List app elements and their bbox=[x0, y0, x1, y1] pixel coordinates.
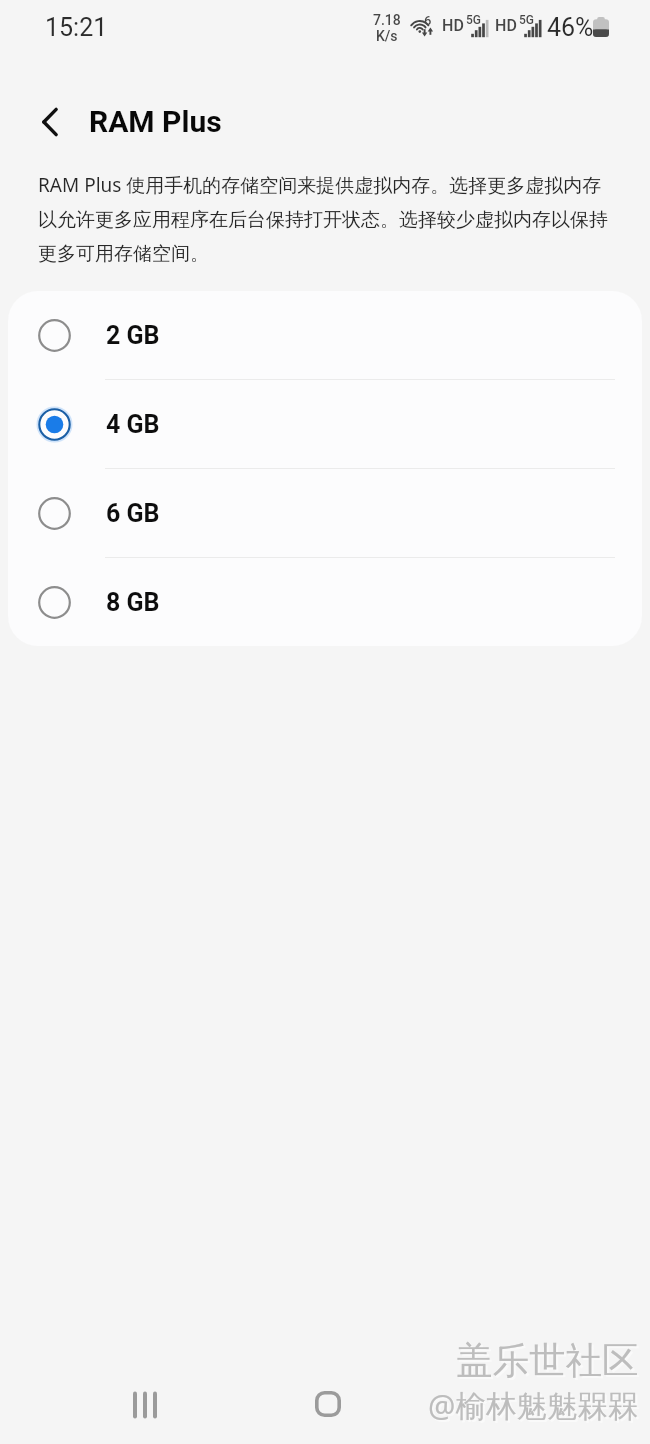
staticText: RAM Plus bbox=[89, 104, 222, 139]
staticText: HD bbox=[442, 16, 464, 35]
staticText: RAM Plus 使用手机的存储空间来提供虚拟内存。选择更多虚拟内存以允许更多应… bbox=[38, 172, 618, 266]
staticText: 5G bbox=[519, 13, 534, 27]
button[interactable]: 6 GB bbox=[8, 469, 642, 557]
button[interactable]: Recent apps bbox=[110, 1374, 180, 1436]
staticText: 7.18 bbox=[373, 12, 401, 28]
staticText: 4 GB bbox=[106, 410, 160, 439]
staticText: 盖乐世社区 bbox=[458, 1340, 641, 1386]
staticText: 5G bbox=[466, 13, 481, 27]
staticText: 6 bbox=[424, 13, 432, 28]
staticText: @榆林魅魅槑槑 bbox=[428, 1384, 639, 1426]
button[interactable]: 4 GB bbox=[8, 380, 642, 468]
staticText: 46% bbox=[547, 13, 594, 42]
staticText: @榆林魅魅槑槑 bbox=[430, 1386, 641, 1428]
button[interactable]: Navigate up bbox=[24, 96, 76, 148]
button[interactable]: Back bbox=[480, 1373, 550, 1435]
button[interactable]: 2 GB bbox=[8, 291, 642, 379]
staticText: 15:21 bbox=[45, 13, 108, 42]
staticText: HD bbox=[495, 16, 517, 35]
button[interactable]: Home bbox=[293, 1373, 363, 1435]
staticText: 6 GB bbox=[106, 499, 160, 528]
staticText: K/s bbox=[376, 28, 398, 44]
staticText: 盖乐世社区 bbox=[456, 1338, 639, 1384]
button[interactable]: 8 GB bbox=[8, 558, 642, 646]
staticText: 8 GB bbox=[106, 588, 160, 617]
staticText: 2 GB bbox=[106, 321, 160, 350]
